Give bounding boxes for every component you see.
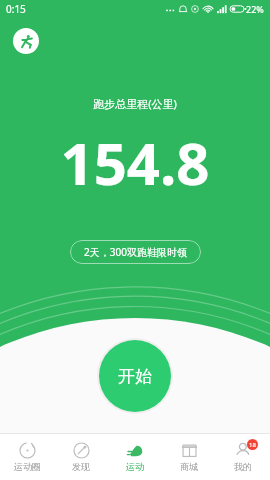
staticText: 0:15 [6, 2, 26, 16]
staticText: 开始 [118, 366, 152, 387]
staticText: 跑步总里程(公里) [93, 96, 177, 111]
button[interactable]: 开始 [99, 340, 171, 412]
button[interactable]: 商城 [162, 438, 216, 476]
staticText: 22% [246, 3, 264, 15]
staticText: 我的 [234, 461, 252, 472]
staticText: 18 [249, 441, 256, 449]
staticText: 运动 [126, 461, 144, 472]
staticText: 发现 [72, 461, 90, 472]
button[interactable]: Running profile [13, 28, 39, 54]
staticText: 154.8 [60, 123, 210, 202]
staticText: 运动圈 [14, 461, 41, 472]
staticText: 2天，300双跑鞋限时领 [84, 245, 187, 259]
staticText: 商城 [180, 461, 198, 472]
button[interactable]: 运动圈 [0, 438, 54, 476]
button[interactable]: 2天，300双跑鞋限时领 [70, 240, 201, 264]
button[interactable]: 发现 [54, 438, 108, 476]
button[interactable]: 18 [216, 438, 270, 476]
button[interactable]: 运动 [108, 438, 162, 476]
